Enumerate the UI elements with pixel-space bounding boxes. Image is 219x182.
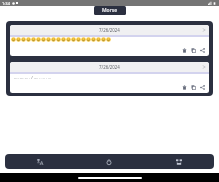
button[interactable]: Alphabet	[144, 154, 214, 169]
button[interactable]: Copy	[191, 85, 196, 90]
button[interactable]: 7/26/2024	[10, 62, 209, 93]
staticText: 1:34	[2, 1, 10, 6]
button[interactable]: Delete	[182, 48, 187, 53]
staticText: Morse	[102, 7, 118, 14]
button[interactable]: 7/26/2024	[10, 25, 209, 56]
button[interactable]: Delete	[182, 85, 187, 90]
staticText: -.-. --- -.. . / .-.. .. -. . ...	[14, 75, 52, 80]
button[interactable]: Share	[200, 48, 205, 53]
button[interactable]: Morse	[94, 6, 126, 15]
button[interactable]: Share	[200, 85, 205, 90]
button[interactable]: Copy	[191, 48, 196, 53]
button[interactable]: Flash	[74, 154, 144, 169]
staticText: 7/26/2024	[99, 64, 120, 70]
button[interactable]: Translate	[5, 154, 74, 169]
staticText: 7/26/2024	[99, 27, 120, 33]
